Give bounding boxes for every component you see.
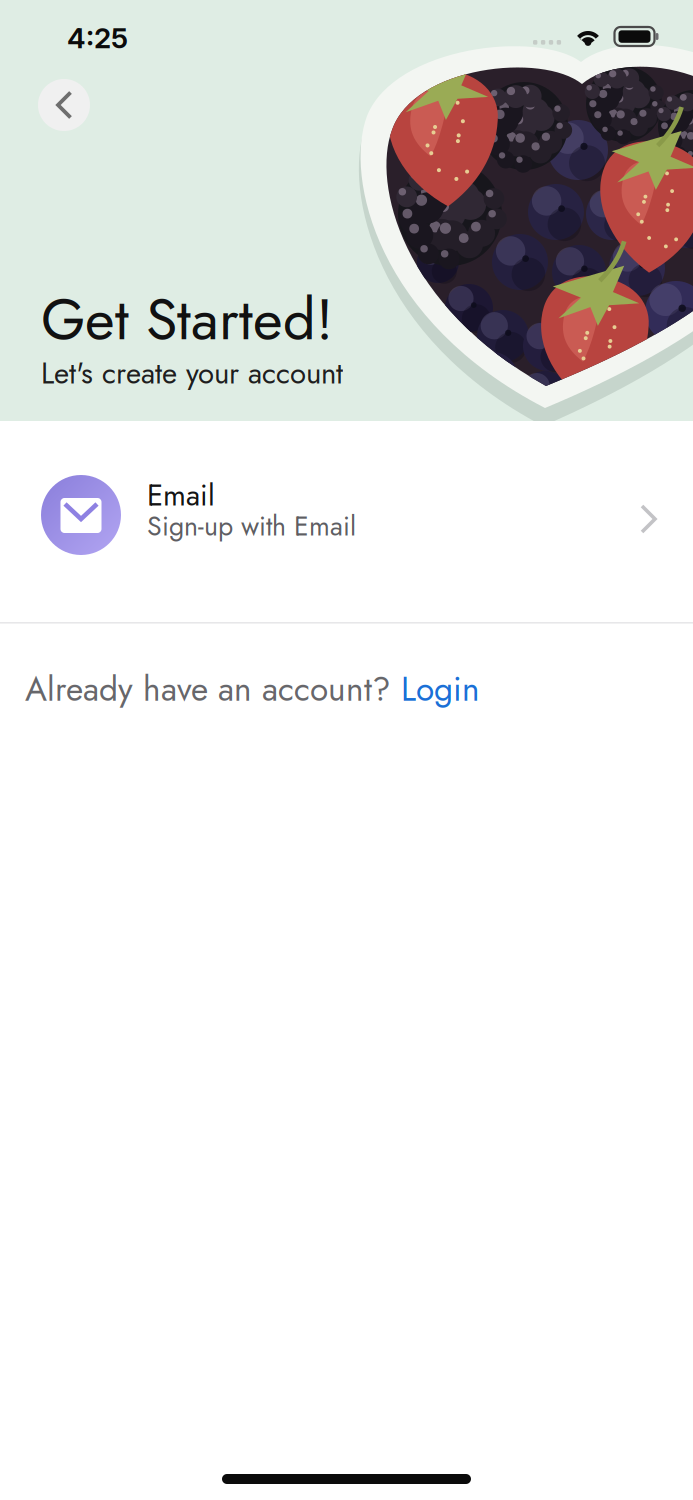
staticText: Let's create your account [41, 352, 343, 394]
staticText: 4:25 [67, 21, 128, 55]
staticText: Login [391, 665, 480, 713]
button[interactable]: Email [0, 421, 693, 622]
staticText: Get Started! [41, 278, 333, 361]
staticText: Already have an account? [25, 665, 391, 713]
button[interactable]: Back [38, 79, 90, 131]
staticText: Email [147, 474, 215, 516]
button[interactable]: Login [391, 665, 480, 713]
staticText: Sign-up with Email [147, 507, 356, 545]
